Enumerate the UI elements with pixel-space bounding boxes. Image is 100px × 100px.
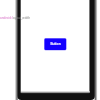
staticText: Button [50, 42, 61, 46]
staticText: ayout_width [13, 16, 31, 20]
staticText: android:l [0, 16, 13, 20]
button[interactable]: Button [44, 38, 67, 50]
